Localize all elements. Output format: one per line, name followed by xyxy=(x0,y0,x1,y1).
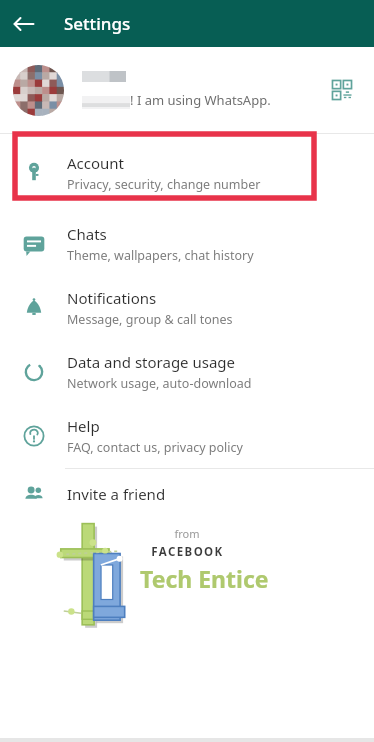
staticText: Chats xyxy=(67,224,107,244)
staticText: FACEBOOK xyxy=(151,544,224,560)
staticText: FAQ, contact us, privacy policy xyxy=(67,439,243,456)
button[interactable]: ! I am using WhatsApp. xyxy=(0,47,374,133)
button[interactable]: Back xyxy=(9,9,39,39)
staticText: Message, group & call tones xyxy=(67,311,233,328)
button[interactable]: Invite a friend xyxy=(0,469,374,519)
button[interactable]: QR code xyxy=(325,73,359,107)
button[interactable]: Notifications xyxy=(0,276,374,340)
staticText: Settings xyxy=(64,12,131,35)
staticText: Account xyxy=(67,153,125,173)
other: Help xyxy=(22,424,46,448)
button[interactable]: Help xyxy=(0,404,374,468)
staticText: Data and storage usage xyxy=(67,352,236,372)
other: Data and storage usage xyxy=(22,360,46,384)
staticText: Notifications xyxy=(67,288,157,308)
staticText: Invite a friend xyxy=(67,484,166,504)
button[interactable]: Account xyxy=(0,141,374,205)
other: Chats xyxy=(22,232,46,256)
staticText: from xyxy=(174,526,200,541)
staticText: Privacy, security, change number xyxy=(67,176,261,193)
staticText: Theme, wallpapers, chat history xyxy=(67,247,254,264)
button[interactable]: Chats xyxy=(0,212,374,276)
other: Notifications xyxy=(22,296,46,320)
staticText: Help xyxy=(67,416,100,436)
staticText: Network usage, auto-download xyxy=(67,375,252,392)
button[interactable]: Data and storage usage xyxy=(0,340,374,404)
staticText: Tech Entice xyxy=(140,563,269,594)
other: Invite a friend xyxy=(22,482,46,506)
staticText: ! I am using WhatsApp. xyxy=(130,91,271,109)
other: Account xyxy=(22,161,46,185)
